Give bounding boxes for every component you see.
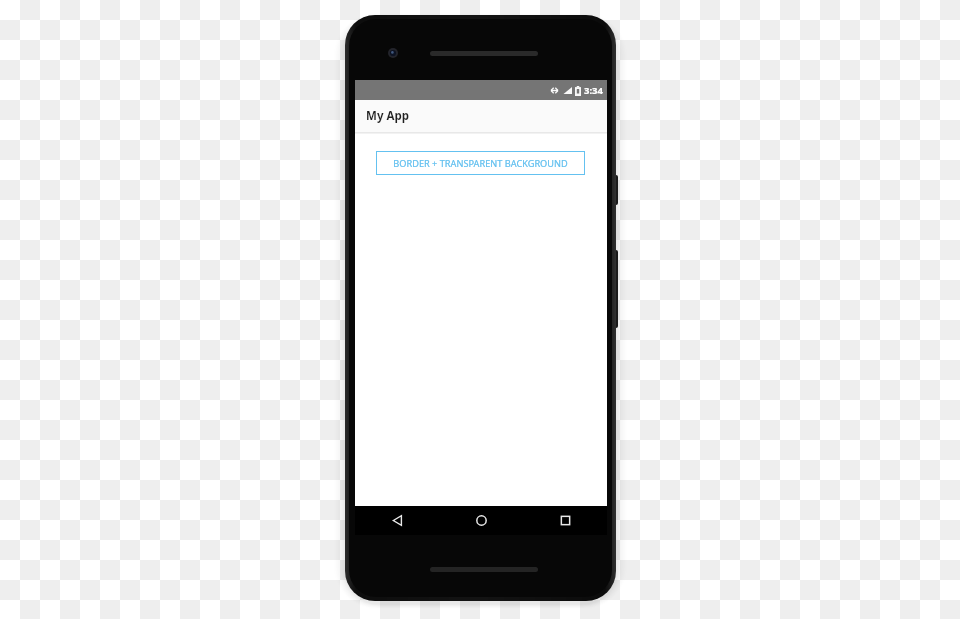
button[interactable]: Back bbox=[355, 506, 439, 535]
staticText: My App bbox=[366, 108, 409, 124]
staticText: BORDER + TRANSPARENT BACKGROUND bbox=[393, 157, 568, 170]
button[interactable]: Home bbox=[439, 506, 523, 535]
button[interactable]: Recent apps bbox=[523, 506, 607, 535]
button[interactable]: BORDER + TRANSPARENT BACKGROUND bbox=[376, 151, 585, 175]
staticText: 3:34 bbox=[584, 84, 603, 97]
